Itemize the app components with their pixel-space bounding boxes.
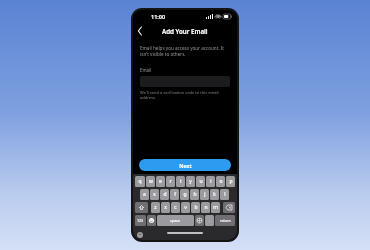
button[interactable]: Backspace: [223, 202, 235, 213]
button[interactable]: w: [146, 176, 155, 187]
button[interactable]: n: [201, 202, 210, 213]
staticText: o: [219, 178, 223, 185]
button[interactable]: Voice input: [195, 215, 204, 226]
button[interactable]: b: [191, 202, 200, 213]
button[interactable]: h: [190, 189, 199, 200]
button[interactable]: return: [215, 215, 235, 226]
button[interactable]: Emoji: [147, 215, 156, 226]
staticText: f: [174, 191, 176, 198]
staticText: s: [153, 191, 156, 198]
staticText: u: [199, 178, 203, 185]
button[interactable]: t: [176, 176, 185, 187]
staticText: 123: [137, 218, 144, 223]
staticText: k: [213, 191, 216, 198]
button[interactable]: l: [220, 189, 229, 200]
button[interactable]: Emoji keyboard: [136, 231, 143, 238]
button[interactable]: r: [166, 176, 175, 187]
button[interactable]: Back: [133, 24, 147, 38]
staticText: q: [138, 178, 142, 185]
button[interactable]: i: [206, 176, 215, 187]
button[interactable]: v: [181, 202, 190, 213]
staticText: .: [209, 218, 211, 224]
staticText: g: [183, 191, 187, 198]
button[interactable]: Next: [139, 159, 231, 171]
button[interactable]: 123: [135, 215, 146, 226]
button[interactable]: m: [211, 202, 220, 213]
staticText: Next: [179, 162, 192, 169]
staticText: Add Your Email: [162, 27, 208, 35]
staticText: n: [204, 204, 208, 211]
staticText: v: [184, 204, 187, 211]
staticText: m: [213, 204, 218, 211]
button[interactable]: a: [140, 189, 149, 200]
staticText: b: [194, 204, 198, 211]
button[interactable]: g: [180, 189, 189, 200]
button[interactable]: q: [135, 176, 145, 187]
button[interactable]: c: [171, 202, 180, 213]
staticText: z: [154, 204, 157, 211]
button[interactable]: d: [160, 189, 169, 200]
button[interactable]: z: [151, 202, 160, 213]
staticText: We'll send a verification code to this e…: [140, 90, 230, 100]
staticText: e: [159, 178, 162, 185]
button[interactable]: x: [161, 202, 170, 213]
button[interactable]: u: [196, 176, 205, 187]
staticText: t: [180, 178, 182, 185]
button[interactable]: Shift: [135, 202, 148, 213]
button[interactable]: p: [226, 176, 235, 187]
staticText: Email helps you access your account. It …: [140, 45, 230, 58]
staticText: d: [163, 191, 167, 198]
staticText: space: [170, 218, 181, 223]
staticText: y: [189, 178, 192, 185]
staticText: i: [210, 178, 212, 185]
staticText: Email: [140, 67, 152, 73]
staticText: a: [143, 191, 146, 198]
staticText: p: [229, 178, 233, 185]
button[interactable]: s: [150, 189, 159, 200]
button[interactable]: space: [157, 215, 194, 226]
button[interactable]: e: [156, 176, 165, 187]
staticText: j: [204, 191, 206, 198]
button[interactable]: o: [216, 176, 225, 187]
staticText: l: [224, 191, 226, 198]
button[interactable]: y: [186, 176, 195, 187]
staticText: c: [174, 204, 177, 211]
staticText: h: [193, 191, 197, 198]
button[interactable]: .: [205, 215, 214, 226]
button[interactable]: f: [170, 189, 179, 200]
staticText: w: [149, 178, 153, 185]
staticText: x: [164, 204, 167, 211]
button[interactable]: k: [210, 189, 219, 200]
button[interactable]: j: [200, 189, 209, 200]
staticText: r: [169, 178, 172, 185]
staticText: return: [220, 218, 231, 223]
staticText: 11:00: [151, 13, 166, 20]
